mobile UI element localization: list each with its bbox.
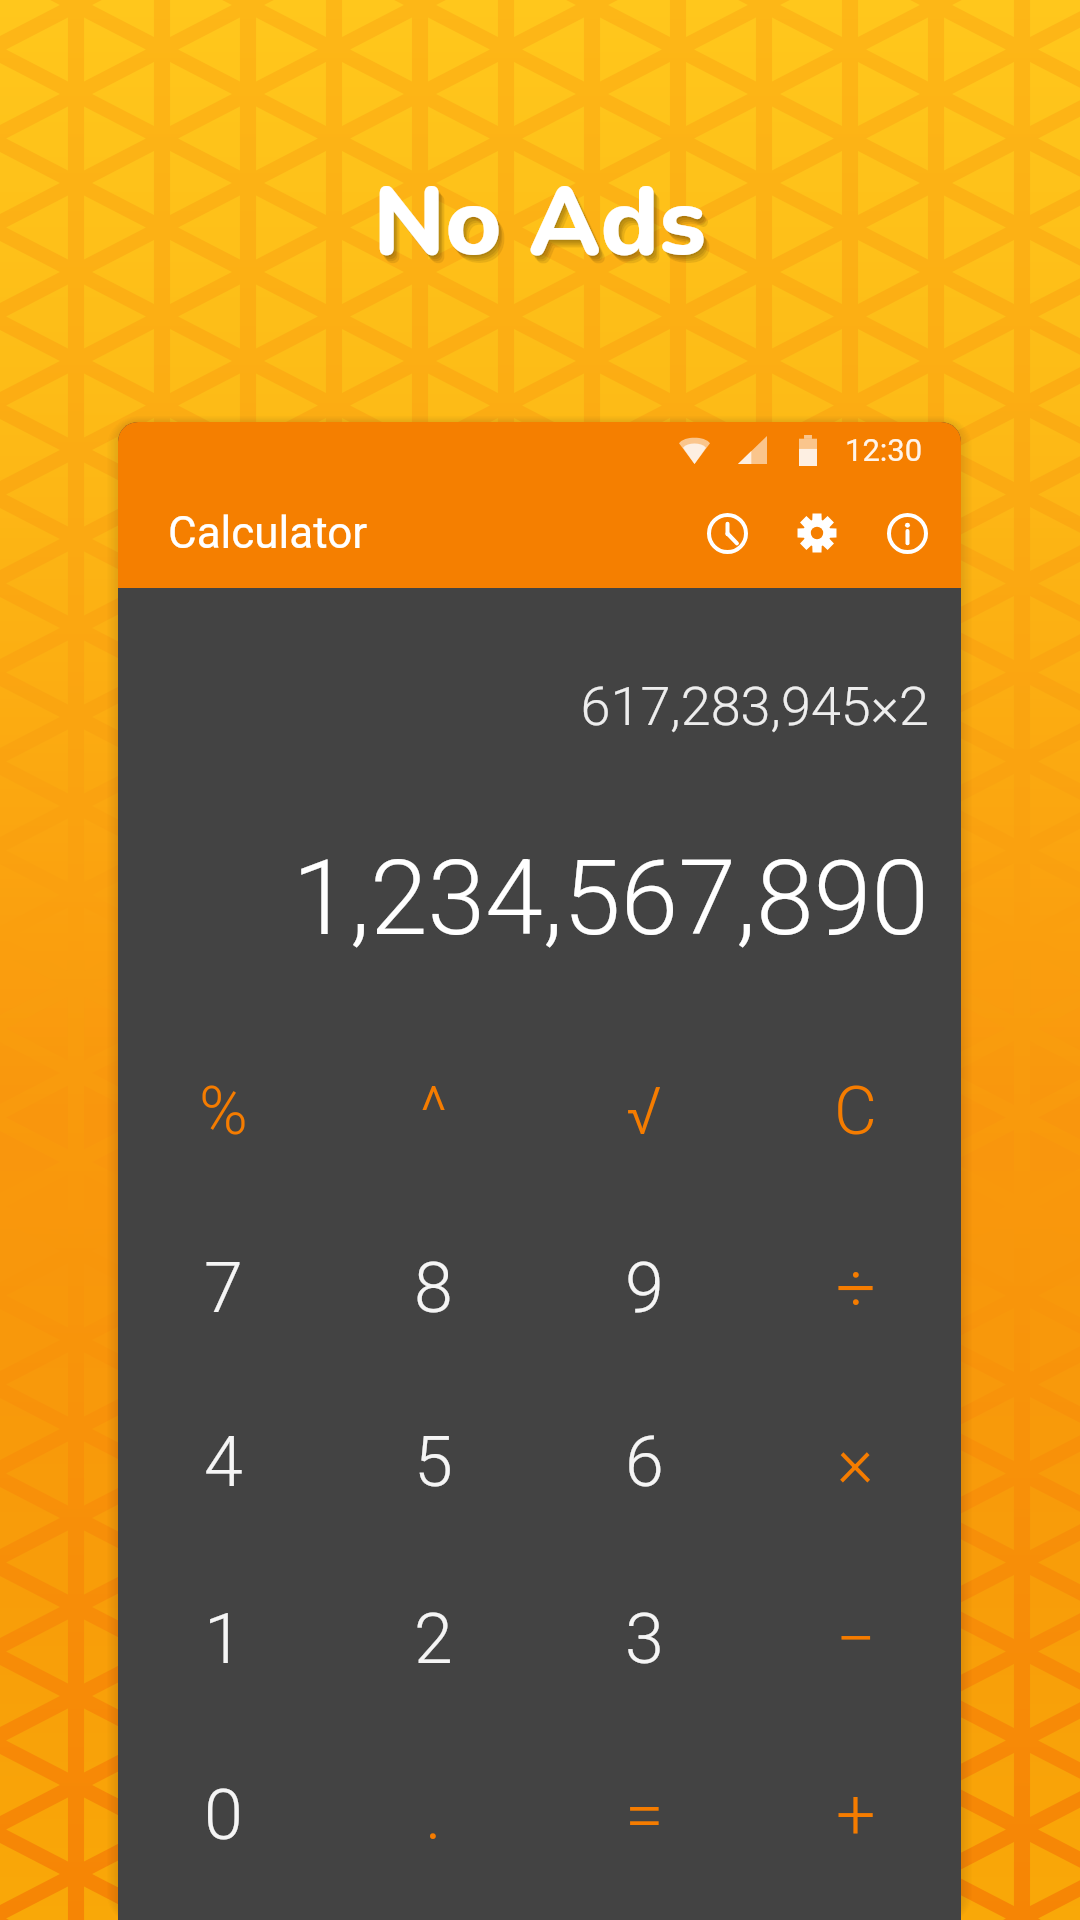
button[interactable]: 5	[328, 1407, 539, 1517]
staticText: 9	[625, 1247, 664, 1329]
staticText: 2	[414, 1598, 453, 1680]
staticText: 12:30	[845, 432, 923, 468]
staticText: 5	[414, 1421, 453, 1503]
button[interactable]: =	[539, 1760, 750, 1870]
button[interactable]: Info	[862, 488, 952, 578]
staticText: 4	[204, 1421, 243, 1503]
staticText: No Ads	[374, 159, 708, 290]
button[interactable]: 1	[118, 1584, 328, 1694]
button[interactable]: +	[750, 1760, 961, 1870]
button[interactable]: %	[118, 1056, 328, 1166]
staticText: No Ads	[373, 157, 707, 288]
button[interactable]: History	[682, 488, 772, 578]
button[interactable]: ^	[328, 1056, 539, 1166]
button[interactable]: √	[539, 1056, 750, 1166]
staticText: −	[836, 1598, 876, 1680]
staticText: 1	[204, 1598, 243, 1680]
button[interactable]: 4	[118, 1407, 328, 1517]
staticText: ×	[837, 1421, 874, 1503]
button[interactable]: ÷	[750, 1233, 961, 1343]
staticText: 6	[625, 1421, 664, 1503]
button[interactable]: 8	[328, 1233, 539, 1343]
staticText: .	[425, 1774, 442, 1856]
button[interactable]: Settings	[772, 488, 862, 578]
button[interactable]: 9	[539, 1233, 750, 1343]
staticText: No Ads	[377, 163, 711, 294]
staticText: 7	[204, 1247, 243, 1329]
button[interactable]: 0	[118, 1760, 328, 1870]
button[interactable]: 6	[539, 1407, 750, 1517]
button[interactable]: −	[750, 1584, 961, 1694]
staticText: √	[626, 1073, 663, 1150]
staticText: ÷	[836, 1247, 876, 1329]
staticText: 0	[204, 1774, 243, 1856]
button[interactable]: ×	[750, 1407, 961, 1517]
staticText: %	[199, 1073, 248, 1150]
staticText: 1,234,567,890	[118, 838, 929, 960]
staticText: =	[625, 1774, 664, 1856]
staticText: ^	[420, 1073, 448, 1150]
staticText: No Ads	[376, 161, 710, 292]
staticText: 3	[625, 1598, 664, 1680]
button[interactable]: 3	[539, 1584, 750, 1694]
staticText: C	[834, 1073, 877, 1150]
staticText: Calculator	[168, 507, 368, 559]
button[interactable]: C	[750, 1056, 961, 1166]
button[interactable]: .	[328, 1760, 539, 1870]
staticText: 8	[414, 1247, 453, 1329]
staticText: No Ads	[379, 165, 713, 296]
button[interactable]: 7	[118, 1233, 328, 1343]
button[interactable]: 2	[328, 1584, 539, 1694]
staticText: +	[836, 1774, 876, 1856]
staticText: 617,283,945×2	[118, 675, 929, 738]
